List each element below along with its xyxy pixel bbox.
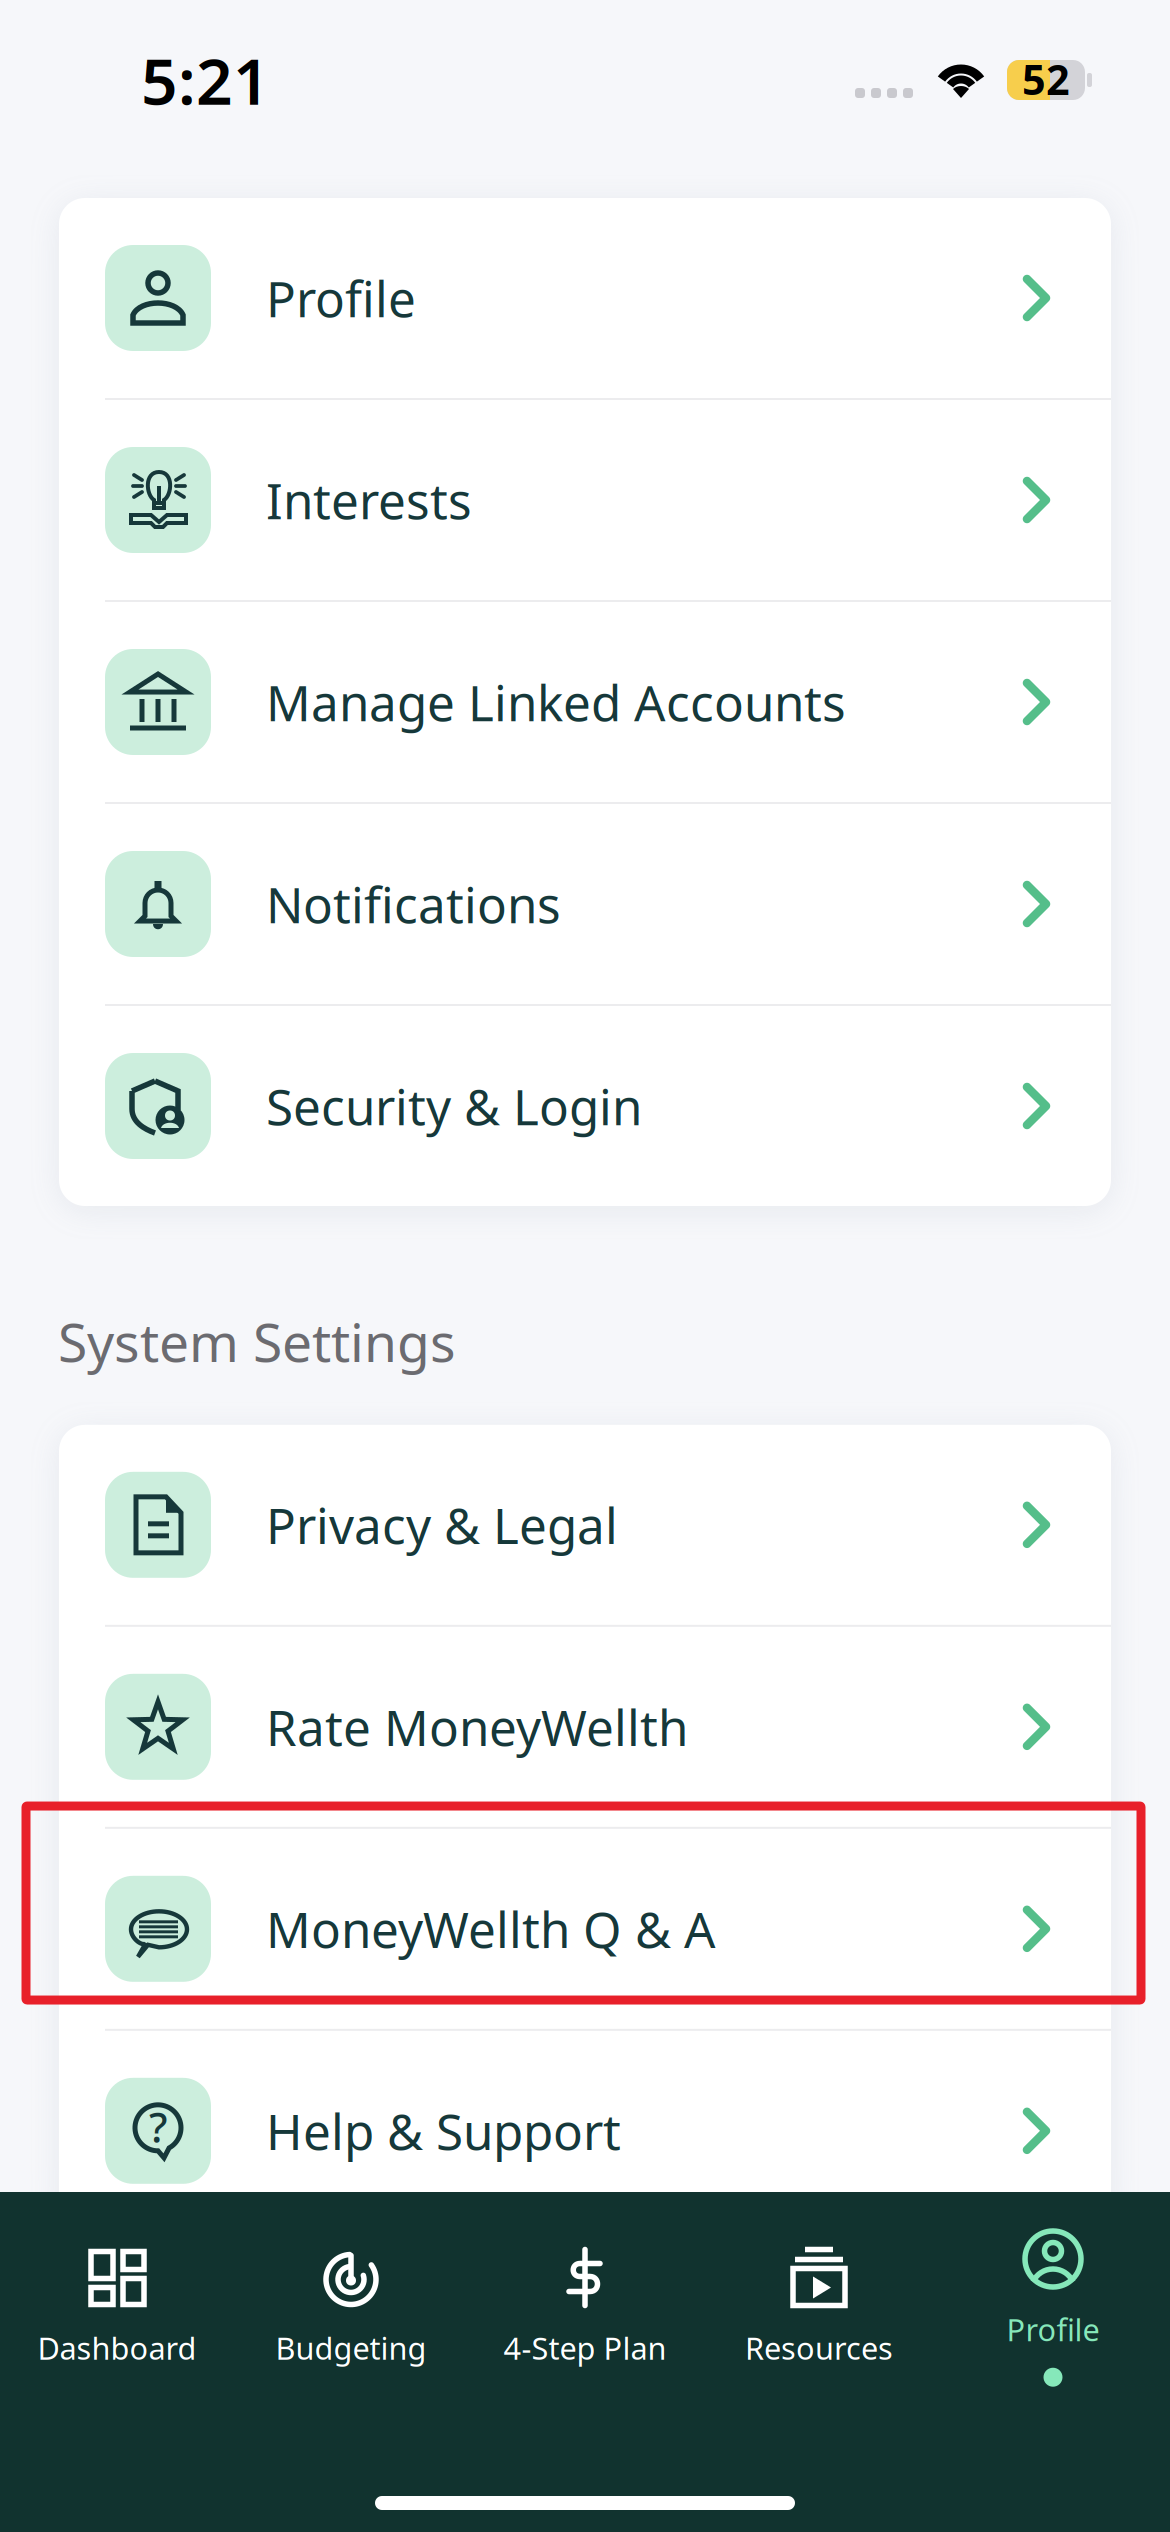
staticText: 4-Step Plan: [503, 2327, 666, 2368]
button[interactable]: Notifications: [59, 804, 1111, 1004]
staticText: ?: [149, 2099, 167, 2154]
button[interactable]: MoneyWellth Q & A: [59, 1829, 1111, 2029]
staticText: Help & Support: [266, 2098, 621, 2164]
button[interactable]: Profile: [59, 198, 1111, 398]
staticText: Privacy & Legal: [266, 1492, 618, 1558]
button[interactable]: Budgeting: [234, 2245, 468, 2368]
staticText: Interests: [266, 467, 472, 533]
button[interactable]: Rate MoneyWellth: [59, 1627, 1111, 1827]
button[interactable]: Resources: [702, 2245, 936, 2368]
staticText: 5:21: [141, 37, 270, 122]
button[interactable]: Dashboard: [0, 2245, 234, 2368]
staticText: Notifications: [266, 871, 561, 937]
staticText: Profile: [266, 265, 416, 331]
button[interactable]: Profile: [936, 2227, 1170, 2387]
staticText: Resources: [745, 2327, 893, 2368]
button[interactable]: Privacy & Legal: [59, 1425, 1111, 1625]
button[interactable]: ?: [59, 2031, 1111, 2231]
button[interactable]: 4-Step Plan: [468, 2245, 702, 2368]
staticText: 52: [1022, 52, 1070, 106]
button[interactable]: Manage Linked Accounts: [59, 602, 1111, 802]
staticText: Manage Linked Accounts: [266, 669, 846, 735]
button[interactable]: Interests: [59, 400, 1111, 600]
staticText: Budgeting: [275, 2327, 426, 2368]
staticText: Dashboard: [37, 2327, 196, 2368]
staticText: MoneyWellth Q & A: [266, 1896, 716, 1962]
staticText: System Settings: [58, 1306, 456, 1377]
staticText: Security & Login: [266, 1073, 642, 1139]
staticText: Profile: [1006, 2309, 1099, 2350]
button[interactable]: Security & Login: [59, 1006, 1111, 1206]
staticText: Rate MoneyWellth: [266, 1694, 688, 1760]
